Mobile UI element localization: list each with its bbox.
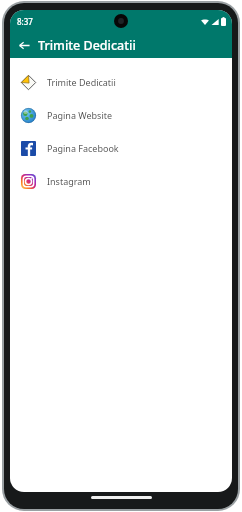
- staticText: Trimite Dedicatii: [47, 76, 116, 88]
- staticText: Trimite Dedicatii: [38, 37, 136, 54]
- staticText: Instagram: [47, 175, 91, 187]
- button[interactable]: Back: [14, 35, 34, 55]
- staticText: Pagina Website: [47, 109, 113, 121]
- button[interactable]: Trimite Dedicatii: [10, 65, 232, 98]
- button[interactable]: Pagina Website: [10, 98, 232, 131]
- staticText: 8:37: [17, 16, 33, 27]
- button[interactable]: Instagram: [10, 164, 232, 197]
- staticText: Pagina Facebook: [47, 142, 119, 154]
- button[interactable]: Pagina Facebook: [10, 131, 232, 164]
